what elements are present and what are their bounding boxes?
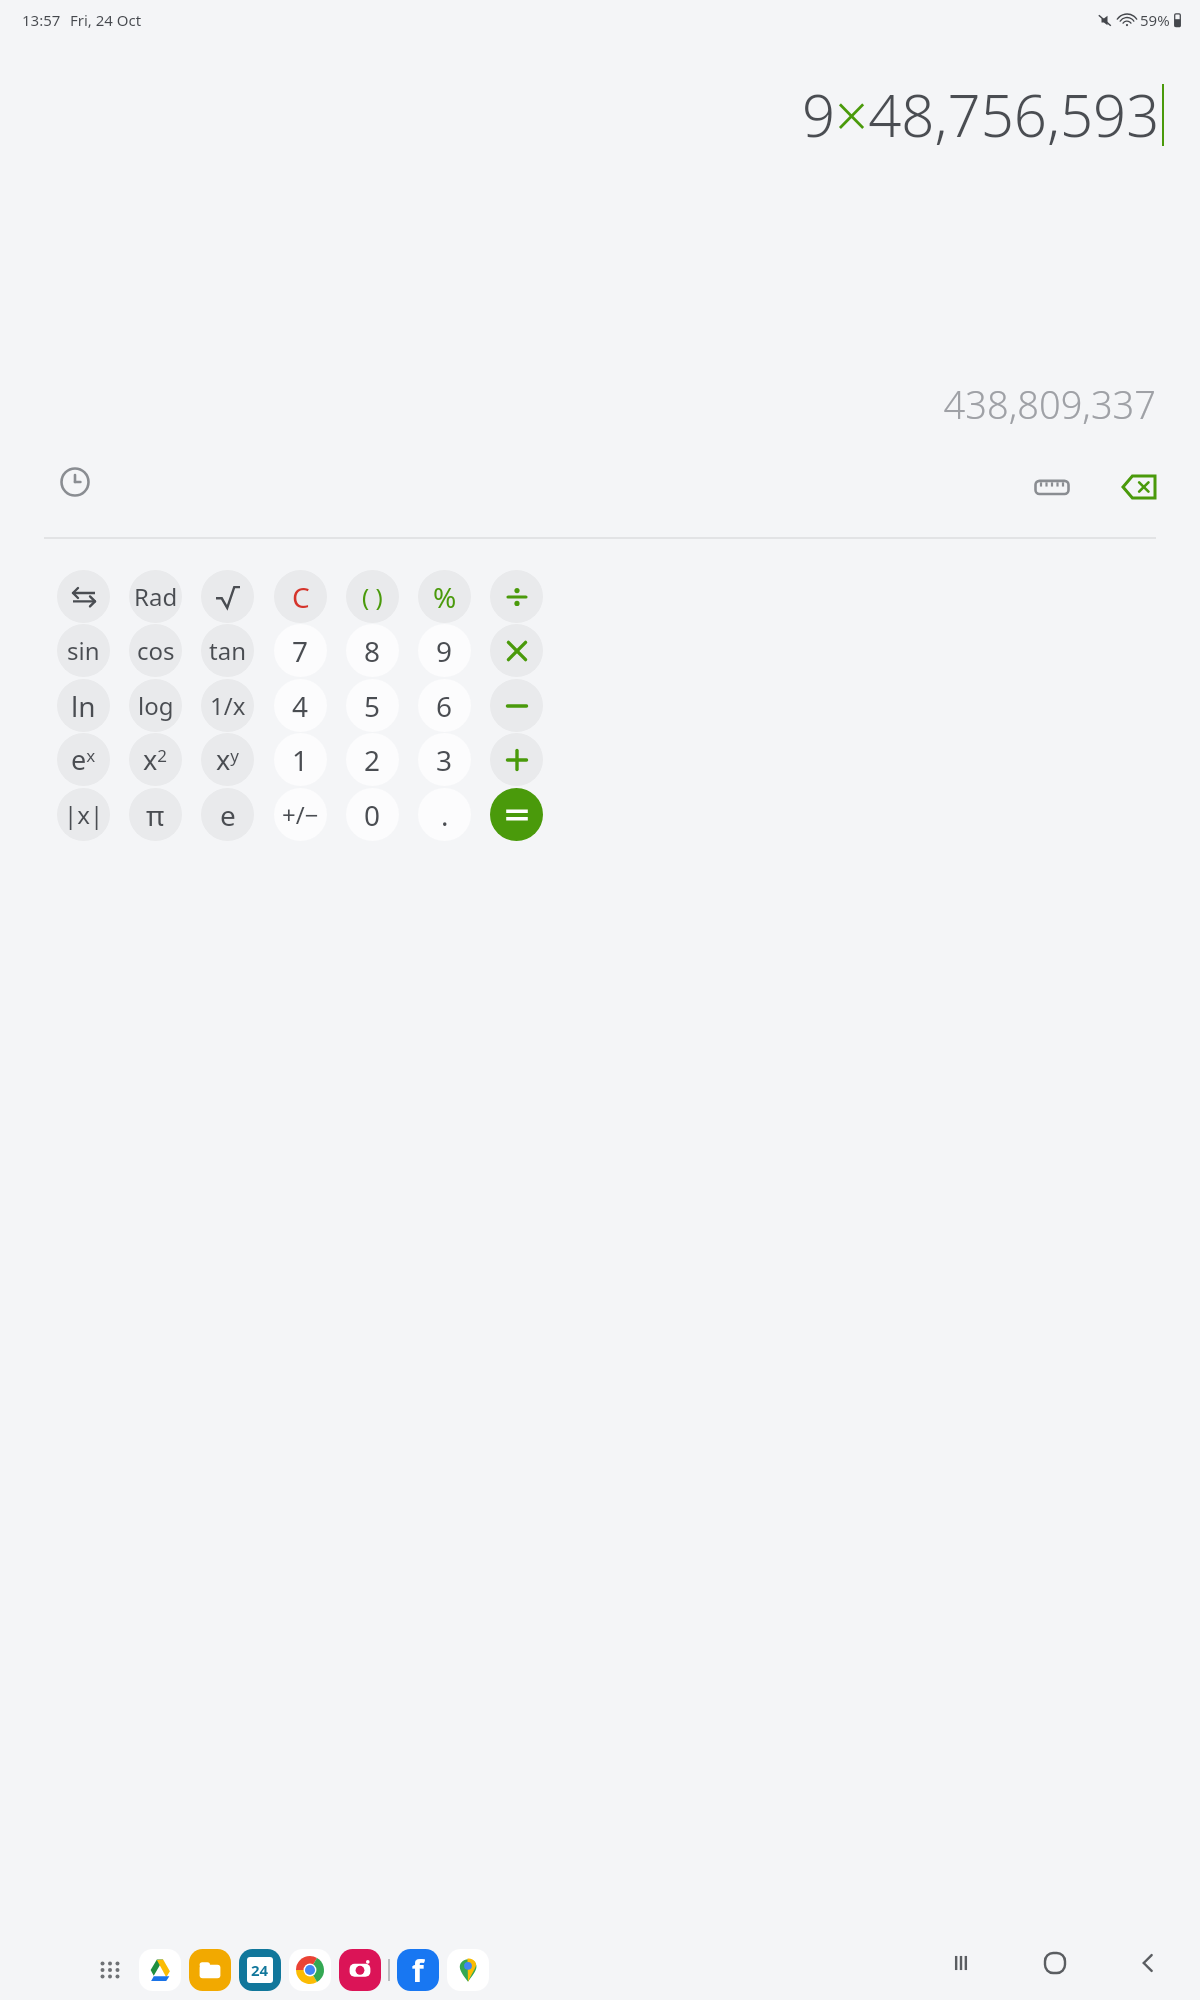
staticText: 9 xyxy=(436,632,453,670)
button[interactable]: Apps xyxy=(88,1948,132,1992)
staticText: Rad xyxy=(134,580,178,613)
button[interactable]: Divide xyxy=(490,570,543,623)
staticText: ln xyxy=(71,687,96,725)
button[interactable]: 1/x xyxy=(201,679,254,732)
staticText: f xyxy=(412,1950,424,1991)
staticText: log xyxy=(138,689,174,722)
staticText: |x| xyxy=(64,798,104,831)
staticText: 7 xyxy=(292,632,309,670)
button[interactable]: Home xyxy=(1026,1934,1084,1992)
button[interactable]: x2 xyxy=(129,733,182,786)
button[interactable]: % xyxy=(418,570,471,623)
button[interactable]: Calendar xyxy=(238,1948,282,1992)
button[interactable]: Multiply xyxy=(490,624,543,677)
button[interactable]: C xyxy=(274,570,327,623)
button[interactable]: ex xyxy=(57,733,110,786)
staticText: . xyxy=(441,796,449,834)
staticText: 0 xyxy=(364,796,381,834)
button[interactable]: Backspace xyxy=(1108,455,1172,519)
button[interactable]: tan xyxy=(201,624,254,677)
button[interactable]: π xyxy=(129,788,182,841)
staticText: 438,809,337 xyxy=(943,378,1156,430)
button[interactable]: . xyxy=(418,788,471,841)
staticText: ( ) xyxy=(362,580,383,613)
staticText: sin xyxy=(67,634,100,667)
button[interactable]: ln xyxy=(57,679,110,732)
button[interactable]: Plus xyxy=(490,733,543,786)
staticText: 1/x xyxy=(210,689,246,722)
button[interactable]: 0 xyxy=(346,788,399,841)
staticText: % xyxy=(433,578,457,616)
button[interactable]: cos xyxy=(129,624,182,677)
staticText: xy xyxy=(216,741,239,778)
button[interactable]: History xyxy=(48,455,102,509)
staticText: 59% xyxy=(1140,10,1170,30)
staticText: e xyxy=(220,796,236,834)
button[interactable]: |x| xyxy=(57,788,110,841)
staticText: 6 xyxy=(436,687,453,725)
staticText: 9×48,756,593 xyxy=(802,75,1160,154)
button[interactable]: Camera xyxy=(338,1948,382,1992)
button[interactable]: 8 xyxy=(346,624,399,677)
button[interactable]: Unit converter xyxy=(1020,455,1084,519)
button[interactable]: My Files xyxy=(188,1948,232,1992)
button[interactable]: 6 xyxy=(418,679,471,732)
button[interactable]: Maps xyxy=(446,1948,490,1992)
staticText: π xyxy=(146,796,165,834)
button[interactable]: e xyxy=(201,788,254,841)
button[interactable]: ( ) xyxy=(346,570,399,623)
button[interactable]: 9 xyxy=(418,624,471,677)
button[interactable]: Drive xyxy=(138,1948,182,1992)
button[interactable]: sin xyxy=(57,624,110,677)
button[interactable]: Recents xyxy=(932,1934,990,1992)
button[interactable]: Chrome xyxy=(288,1948,332,1992)
button[interactable]: 3 xyxy=(418,733,471,786)
staticText: 24 xyxy=(251,1960,269,1980)
staticText: ex xyxy=(71,741,96,778)
staticText: 8 xyxy=(364,632,381,670)
staticText: tan xyxy=(209,634,246,667)
staticText: x2 xyxy=(143,741,168,778)
button[interactable]: Square root xyxy=(201,570,254,623)
button[interactable]: +/− xyxy=(274,788,327,841)
button[interactable]: 4 xyxy=(274,679,327,732)
button[interactable]: 7 xyxy=(274,624,327,677)
button[interactable]: 2 xyxy=(346,733,399,786)
staticText: cos xyxy=(137,634,175,667)
button[interactable]: Facebook xyxy=(396,1948,440,1992)
button[interactable]: Back xyxy=(1120,1934,1178,1992)
staticText: +/− xyxy=(282,798,319,831)
staticText: 3 xyxy=(436,741,453,779)
button[interactable]: Rad xyxy=(129,570,182,623)
button[interactable]: Equals xyxy=(490,788,543,841)
button[interactable]: xy xyxy=(201,733,254,786)
staticText: 4 xyxy=(292,687,309,725)
button[interactable]: Minus xyxy=(490,679,543,732)
button[interactable]: log xyxy=(129,679,182,732)
staticText: C xyxy=(292,578,310,616)
staticText: 13:57 xyxy=(22,10,61,30)
button[interactable]: Toggle xyxy=(57,570,110,623)
staticText: 5 xyxy=(364,687,381,725)
staticText: 1 xyxy=(292,741,309,779)
staticText: 2 xyxy=(364,741,381,779)
button[interactable]: 5 xyxy=(346,679,399,732)
button[interactable]: 1 xyxy=(274,733,327,786)
staticText: Fri, 24 Oct xyxy=(70,10,142,30)
